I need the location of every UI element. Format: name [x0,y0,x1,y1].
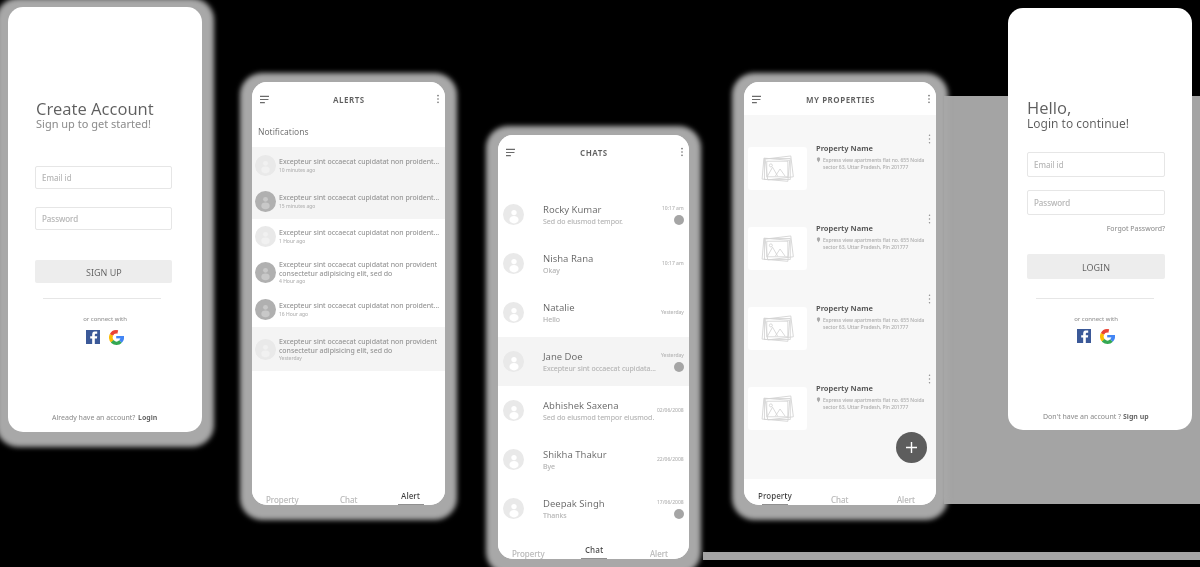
button[interactable]: Shikha Thakur [498,435,689,484]
staticText: Already have an account? [52,413,138,423]
staticText: or connect with [8,315,202,323]
button[interactable]: Google [1100,329,1115,344]
button[interactable]: Property Name [744,131,936,211]
button[interactable]: Facebook [1077,329,1091,343]
button[interactable]: Excepteur sint occaecat cupidatat non pr… [252,253,445,291]
staticText: CHATS [580,147,608,158]
button[interactable]: More options [925,132,934,146]
button[interactable]: Alert [648,545,670,559]
button[interactable]: Property Name [744,211,936,291]
button[interactable]: Alert [396,487,426,505]
staticText: 02/06/2008 [657,407,684,414]
staticText: Express view apartments flat no. 655 Noi… [823,317,925,331]
button[interactable]: Property Name [744,291,936,371]
staticText: Notifications [258,126,309,138]
button[interactable]: Menu [502,144,518,160]
staticText: Email id [1034,159,1064,170]
staticText: Login to continue! [1027,115,1129,131]
staticText: Excepteur sint occaecat cupidatat non pr… [279,157,440,167]
button[interactable]: More options [925,212,934,226]
staticText: 10 minutes ago [279,167,316,174]
button[interactable]: Excepteur sint occaecat cupidatat non pr… [252,183,445,219]
button[interactable]: More options [925,292,934,306]
staticText: 4 Hour ago [279,278,306,285]
staticText: Yesterday [279,355,302,362]
staticText: Abhishek Saxena [543,399,619,412]
button[interactable]: More options [925,372,934,386]
staticText: Deepak Singh [543,497,605,510]
button[interactable]: Chat [579,541,609,559]
staticText: Create Account [36,97,154,119]
button[interactable]: Deepak Singh [498,484,689,533]
staticText: Bye [543,462,556,472]
button[interactable]: More options [677,147,687,157]
button[interactable]: Property Name [744,371,936,451]
button[interactable]: Excepteur sint occaecat cupidatat non pr… [252,219,445,253]
staticText: Password [1034,197,1071,208]
button[interactable]: More options [924,94,934,104]
staticText: Property Name [816,303,873,313]
button[interactable]: Nisha Rana [498,239,689,288]
staticText: Okay [543,266,560,276]
staticText: Forgot Password? [1008,224,1165,234]
button[interactable]: Google [109,330,124,345]
button[interactable]: Abhishek Saxena [498,386,689,435]
button[interactable]: SIGN UP [35,260,172,283]
staticText: Yesterday [661,309,684,316]
staticText: Thanks [543,511,567,521]
button[interactable]: Property [264,491,301,505]
button[interactable]: Natalie [498,288,689,337]
staticText: Rocky Kumar [543,203,602,216]
staticText: Yesterday [661,352,684,359]
staticText: Sed do eiusmod tempor eiusmod... [543,413,654,423]
staticText: Property Name [816,143,873,153]
button[interactable]: Add property [896,432,927,463]
staticText: Alert [650,548,668,559]
staticText: Excepteur sint occaecat cupidatat non pr… [279,193,440,203]
button[interactable]: Password [1027,190,1165,215]
button[interactable]: Jane Doe [498,337,689,386]
staticText: SIGN UP [86,266,122,278]
staticText: Property Name [816,223,873,233]
staticText: Property [758,490,792,501]
button[interactable]: LOGIN [1027,254,1165,279]
button[interactable]: Password [35,207,172,230]
button[interactable]: Property [756,487,794,505]
staticText: Excepteur sint occaecat cupidatat non pr… [279,228,440,238]
button[interactable]: More options [433,94,443,104]
staticText: or connect with [1008,315,1184,323]
staticText: Property [266,494,299,505]
staticText: 15 minutes ago [279,203,316,210]
staticText: 22/06/2008 [657,456,684,463]
button[interactable]: Menu [748,91,764,107]
button[interactable]: Excepteur sint occaecat cupidatat non pr… [252,147,445,183]
staticText: LOGIN [1082,261,1111,273]
staticText: Alert [401,490,421,501]
staticText: Jane Doe [543,350,583,363]
button[interactable]: Property [510,545,547,559]
staticText: Excepteur sint occaecat cupidatat non pr… [279,301,440,311]
staticText: Property [512,548,545,559]
staticText: Password [42,213,79,224]
button[interactable]: Excepteur sint occaecat cupidatat non pr… [252,291,445,327]
button[interactable]: Excepteur sint occaecat cupidatat non pr… [252,327,445,371]
button[interactable]: Email id [35,166,172,189]
button[interactable]: Email id [1027,152,1165,177]
button[interactable]: Rocky Kumar [498,190,689,239]
button[interactable]: Facebook [86,330,100,344]
staticText: Don't have an account ? [1043,412,1123,422]
staticText: Sign up [1123,412,1149,422]
staticText: 10:17 am [662,205,684,212]
staticText: Natalie [543,301,575,314]
staticText: ALERTS [333,94,365,105]
staticText: Hello, [1027,96,1072,118]
staticText: Alert [897,494,915,505]
button[interactable]: Chat [338,491,360,505]
button[interactable]: Alert [895,491,917,505]
button[interactable]: Chat [829,491,851,505]
button[interactable]: Menu [256,91,272,107]
staticText: 10:17 am [662,260,684,267]
staticText: Shikha Thakur [543,448,607,461]
staticText: Excepteur sint occaecat cupidatat non pr… [279,260,440,278]
staticText: Sign up to get started! [36,116,151,131]
